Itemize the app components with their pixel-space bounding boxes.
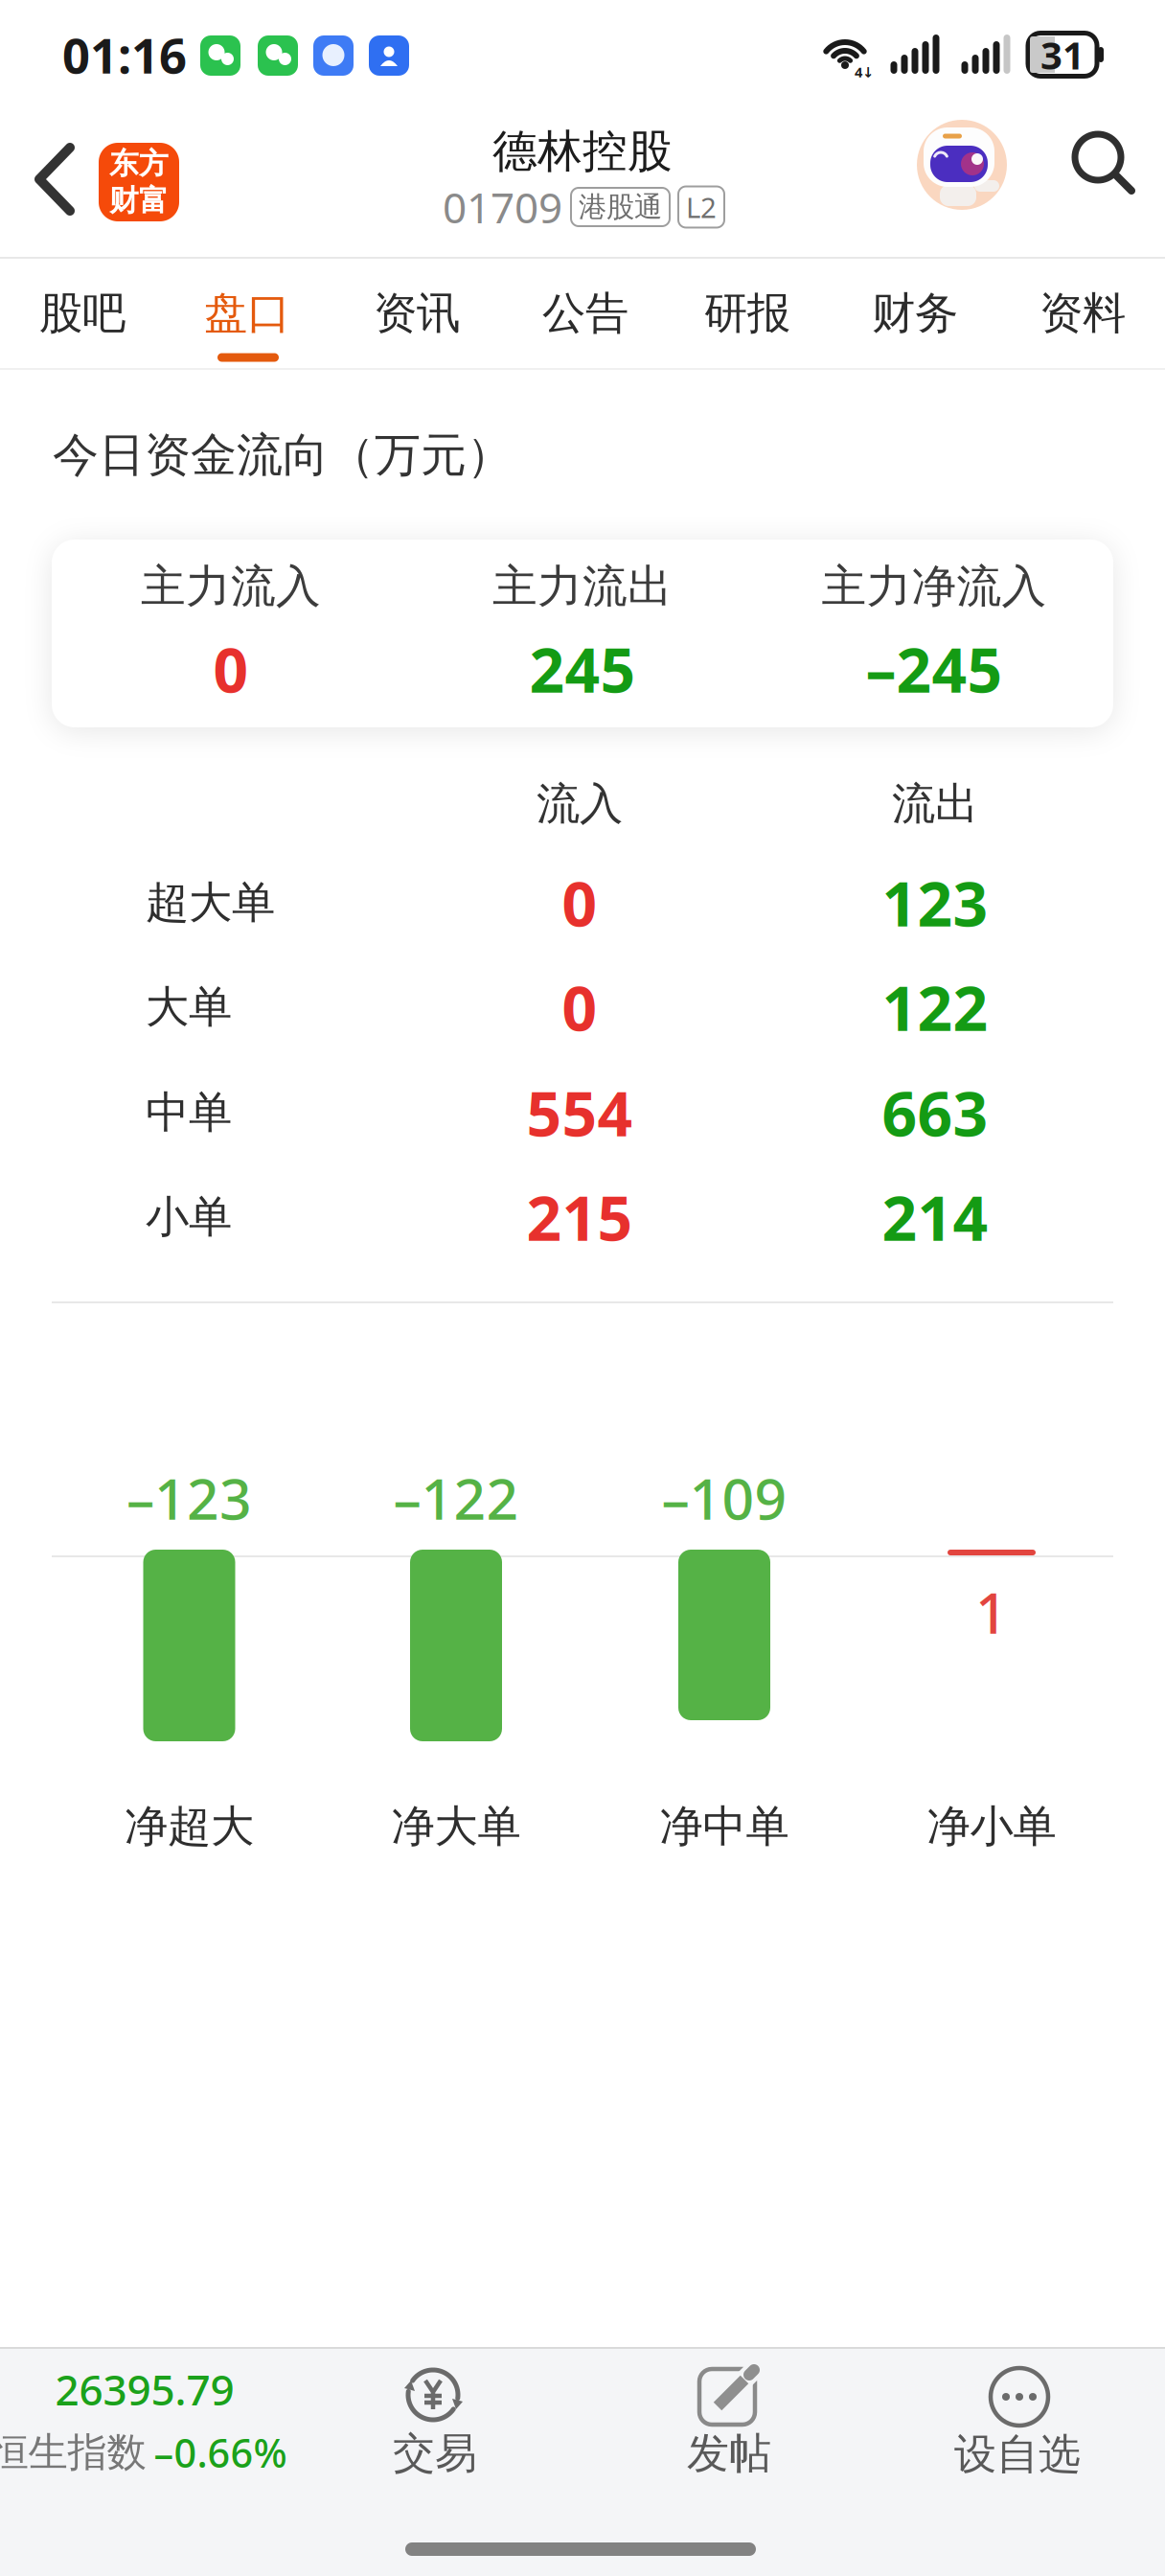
button[interactable]: 东方财富 <box>99 143 179 221</box>
button[interactable]: 财务 <box>843 265 987 361</box>
staticText: 资料 <box>1039 287 1126 340</box>
staticText: 公告 <box>542 287 628 340</box>
staticText: 大单 <box>146 981 232 1034</box>
staticText: 港股通 <box>579 190 662 224</box>
staticText: –245 <box>866 628 1003 710</box>
staticText: –109 <box>662 1460 787 1535</box>
staticText: L2 <box>686 188 717 226</box>
staticText: –0.66% <box>154 2426 287 2479</box>
staticText: 今日资金流向（万元） <box>53 427 513 483</box>
staticText: 214 <box>882 1176 988 1258</box>
staticText: 盘口 <box>204 287 290 340</box>
staticText: 资讯 <box>374 287 460 340</box>
staticText: 554 <box>526 1072 633 1153</box>
button[interactable]: 发帖 <box>662 2345 796 2489</box>
staticText: 德林控股 <box>492 124 673 179</box>
button[interactable]: Search <box>1072 131 1135 195</box>
staticText: 净小单 <box>927 1800 1056 1853</box>
staticText: 01:16 <box>62 22 187 87</box>
staticText: 4↓ <box>855 63 874 81</box>
staticText: 主力流出 <box>492 559 673 614</box>
button[interactable]: AI assistant <box>916 119 1008 211</box>
staticText: 超大单 <box>146 876 275 929</box>
staticText: 设自选 <box>954 2428 1081 2480</box>
staticText: 研报 <box>704 287 790 340</box>
staticText: 财富 <box>109 183 169 219</box>
button[interactable]: 交易 <box>368 2345 502 2489</box>
staticText: –123 <box>126 1460 252 1535</box>
staticText: 交易 <box>393 2427 477 2479</box>
staticText: 主力流入 <box>141 559 321 614</box>
staticText: 股吧 <box>39 287 126 340</box>
staticText: 122 <box>882 966 988 1048</box>
staticText: 小单 <box>146 1190 232 1244</box>
staticText: 663 <box>882 1072 988 1153</box>
staticText: 净超大 <box>125 1800 254 1853</box>
staticText: 净中单 <box>660 1800 789 1853</box>
button[interactable]: 盘口 <box>175 265 319 361</box>
staticText: 31 <box>1040 29 1085 80</box>
staticText: 中单 <box>146 1086 232 1139</box>
button[interactable]: 资讯 <box>345 265 489 361</box>
staticText: 净大单 <box>391 1800 521 1853</box>
staticText: –122 <box>393 1460 519 1535</box>
staticText: 东方 <box>109 145 169 182</box>
button[interactable]: Back <box>28 140 83 218</box>
button[interactable]: 设自选 <box>947 2345 1090 2489</box>
staticText: 215 <box>526 1176 633 1258</box>
staticText: 发帖 <box>687 2427 771 2479</box>
button[interactable]: 研报 <box>675 265 819 361</box>
staticText: 流出 <box>892 777 978 831</box>
staticText: 0 <box>213 628 249 710</box>
staticText: 主力净流入 <box>822 559 1047 614</box>
button[interactable]: 26395.79 <box>0 2345 287 2489</box>
staticText: 恒生指数 <box>0 2428 146 2477</box>
staticText: 01709 <box>443 179 562 235</box>
button[interactable]: 公告 <box>514 265 657 361</box>
staticText: 0 <box>562 966 597 1048</box>
staticText: 0 <box>562 862 597 943</box>
staticText: 财务 <box>872 287 958 340</box>
button[interactable]: 资料 <box>1011 265 1154 361</box>
staticText: 1 <box>975 1575 1008 1649</box>
button[interactable]: 股吧 <box>11 265 154 361</box>
staticText: 123 <box>882 862 988 943</box>
staticText: 26395.79 <box>55 2361 234 2417</box>
staticText: 流入 <box>537 777 623 831</box>
staticText: 245 <box>529 628 636 710</box>
